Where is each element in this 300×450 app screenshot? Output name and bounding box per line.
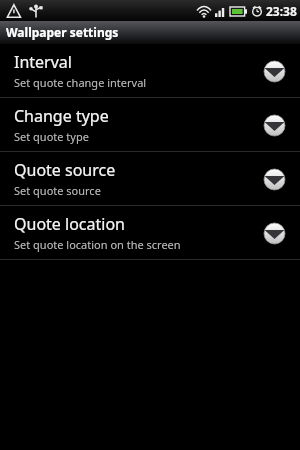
staticText: Quote location <box>14 213 125 235</box>
button[interactable]: Quote source <box>0 152 300 205</box>
staticText: Wallpaper settings <box>6 24 119 40</box>
button[interactable]: Expand Interval <box>262 59 286 83</box>
staticText: Set quote location on the screen <box>14 237 181 252</box>
button[interactable]: Expand Change type <box>262 113 286 137</box>
button[interactable]: Expand Quote location <box>262 221 286 245</box>
staticText: 23:38 <box>266 3 297 19</box>
button[interactable]: Interval <box>0 44 300 97</box>
staticText: Set quote type <box>14 129 89 144</box>
button[interactable]: Expand Quote source <box>262 167 286 191</box>
staticText: Interval <box>14 51 72 73</box>
button[interactable]: Change type <box>0 98 300 151</box>
button[interactable]: Quote location <box>0 206 300 259</box>
staticText: Quote source <box>14 159 116 181</box>
staticText: Set quote change interval <box>14 75 147 90</box>
staticText: Set quote source <box>14 183 101 198</box>
staticText: Change type <box>14 105 109 127</box>
